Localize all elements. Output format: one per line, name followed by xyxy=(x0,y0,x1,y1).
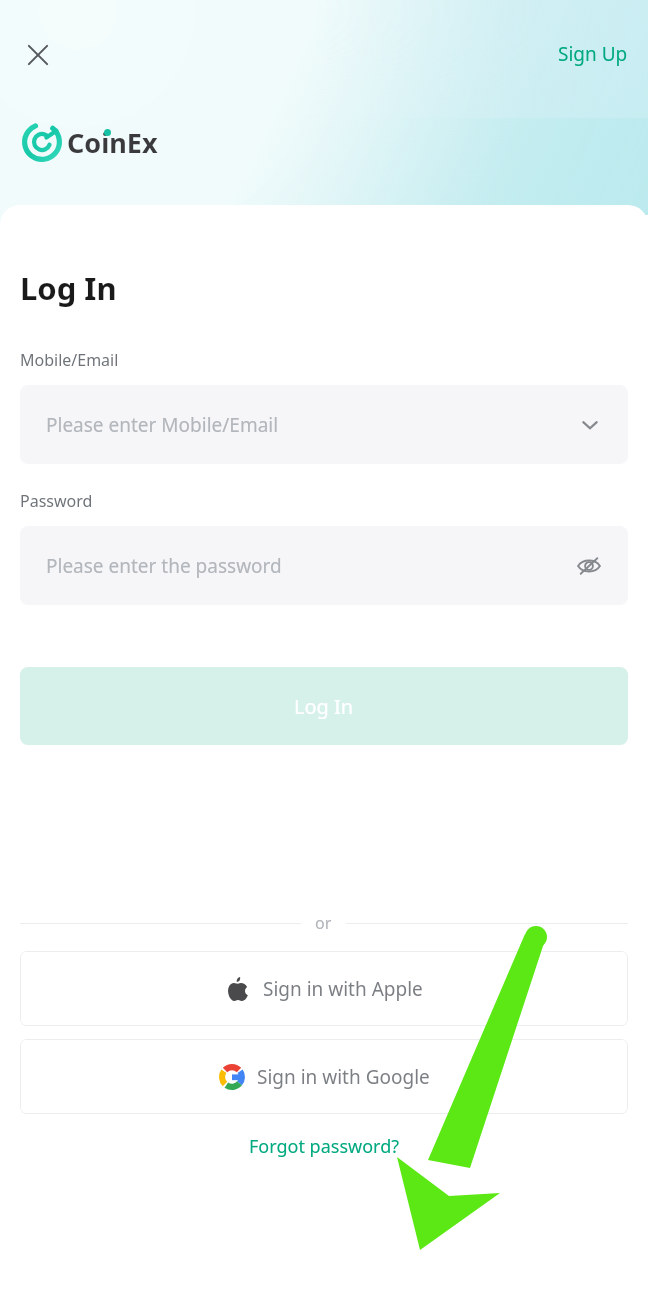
button[interactable]: Sign Up xyxy=(538,33,648,75)
staticText: Log In xyxy=(294,693,354,720)
staticText: CoinEx xyxy=(67,124,158,161)
staticText: Sign in with Google xyxy=(257,1064,430,1090)
button[interactable]: Close xyxy=(14,31,62,79)
staticText: Password xyxy=(20,490,93,512)
button[interactable]: Please enter the password xyxy=(20,526,628,605)
button[interactable]: Sign in with Google xyxy=(20,1039,628,1114)
staticText: Sign in with Apple xyxy=(263,976,423,1002)
button[interactable]: Forgot password? xyxy=(237,1130,412,1163)
staticText: Sign Up xyxy=(558,41,628,67)
staticText: Forgot password? xyxy=(249,1134,400,1159)
staticText: Log In xyxy=(20,267,117,309)
staticText: or xyxy=(315,912,332,934)
button[interactable]: Show password xyxy=(576,553,602,579)
button[interactable]: Please enter Mobile/Email xyxy=(20,385,628,464)
staticText: Please enter Mobile/Email xyxy=(46,412,578,438)
button[interactable]: Sign in with Apple xyxy=(20,951,628,1026)
button[interactable]: Log In xyxy=(20,667,628,745)
staticText: Mobile/Email xyxy=(20,349,119,371)
button[interactable]: Select country code xyxy=(578,413,602,437)
staticText: Please enter the password xyxy=(46,553,576,579)
